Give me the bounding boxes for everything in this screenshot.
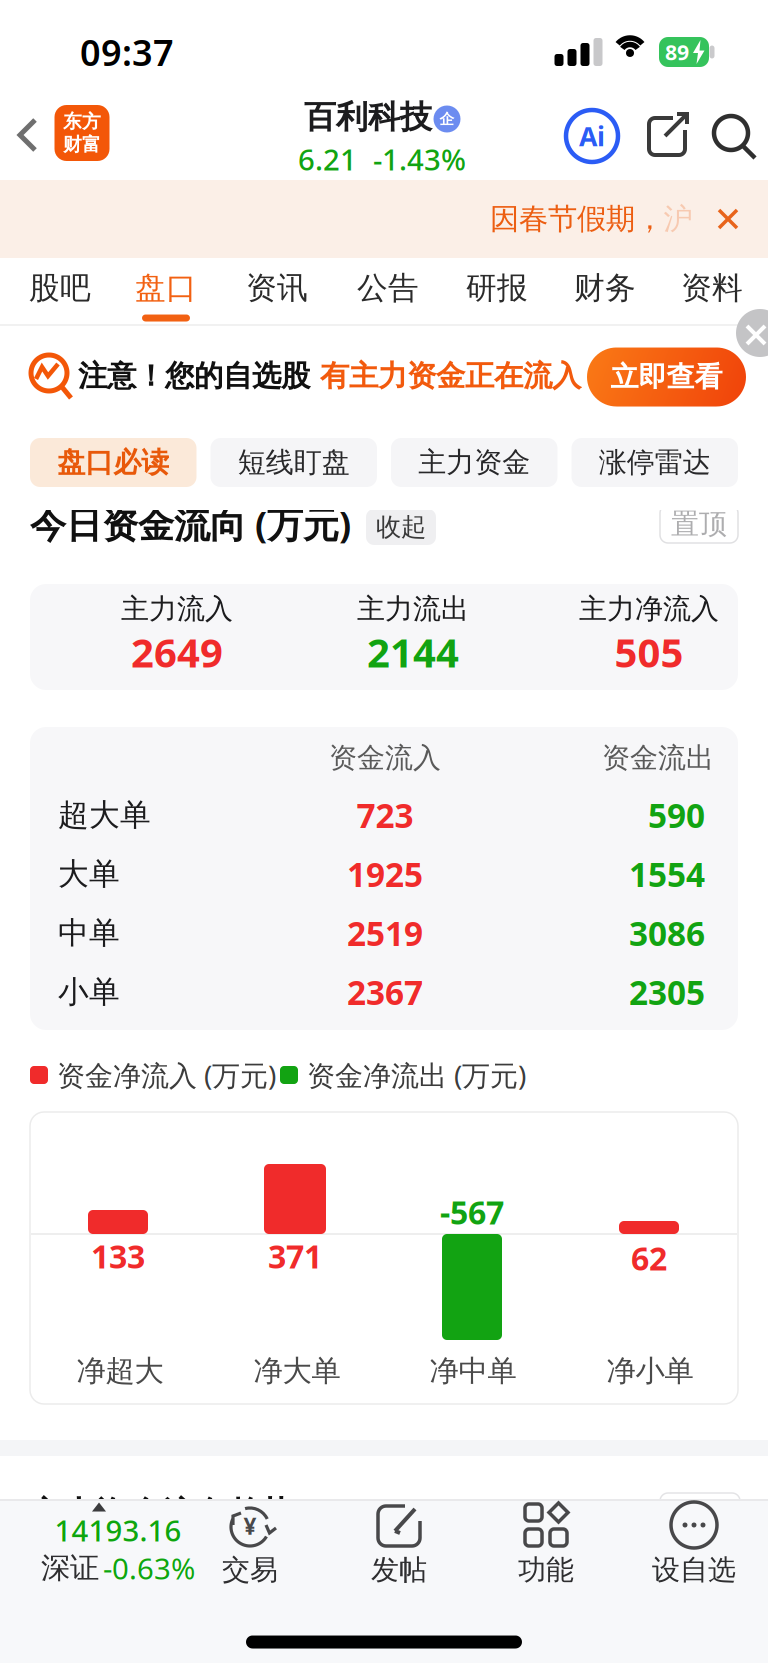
button[interactable]: 收起 [366, 509, 436, 545]
staticText: 立即查看 [610, 360, 722, 394]
staticText: 沪 [663, 201, 692, 237]
button[interactable]: 股吧 [12, 258, 108, 318]
staticText: 2519 [347, 911, 423, 955]
staticText: 设自选 [652, 1553, 736, 1587]
staticText: 百利科技 [304, 97, 432, 137]
button[interactable]: ¥ [155, 1496, 345, 1596]
staticText: 财务 [574, 269, 636, 307]
button[interactable]: 功能 [451, 1496, 641, 1596]
staticText: 资金流出 [602, 741, 714, 775]
staticText: 盘口必读 [57, 445, 169, 480]
staticText: 62 [631, 1237, 667, 1279]
button[interactable]: 主力资金 [391, 438, 557, 487]
staticText: 主力资金流向趋势 [30, 1493, 294, 1534]
staticText: -0.63% [103, 1548, 195, 1587]
staticText: 资金净流出 (万元) [307, 1056, 526, 1094]
button[interactable]: 立即查看 [587, 347, 746, 406]
staticText: 置顶 [671, 507, 727, 541]
button[interactable]: Back [17, 118, 39, 152]
button[interactable]: Search [711, 113, 757, 159]
staticText: 09:37 [80, 28, 174, 76]
staticText: 功能 [518, 1553, 574, 1587]
staticText: 研报 [466, 269, 528, 307]
staticText: 深证 [41, 1550, 99, 1586]
staticText: -567 [440, 1191, 504, 1233]
button[interactable]: Share [645, 112, 691, 158]
staticText: 2144 [367, 625, 459, 678]
staticText: 股吧 [29, 269, 91, 307]
staticText: 371 [268, 1235, 322, 1277]
staticText: 净超大 [76, 1353, 163, 1389]
button[interactable]: AI assistant [564, 108, 620, 164]
staticText: 盘口 [135, 269, 197, 307]
staticText: 净大单 [253, 1353, 340, 1389]
staticText: 公告 [357, 269, 419, 307]
staticText: 净中单 [429, 1353, 516, 1389]
button[interactable]: Close banner [717, 208, 739, 230]
button[interactable]: 14193.16 [10, 1496, 200, 1596]
staticText: 小单 [58, 973, 120, 1011]
staticText: 发帖 [371, 1553, 427, 1587]
button[interactable]: 置顶 [660, 505, 738, 543]
staticText: 资金流入 [329, 741, 441, 775]
staticText: 590 [648, 793, 705, 837]
staticText: 短线盯盘 [238, 445, 350, 480]
button[interactable]: 资料 [664, 258, 760, 318]
button[interactable]: 短线盯盘 [210, 438, 377, 487]
staticText: 收起 [376, 511, 426, 542]
staticText: 133 [91, 1235, 145, 1277]
button[interactable]: 盘口 [118, 258, 214, 318]
button[interactable]: 公告 [340, 258, 436, 318]
staticText: 3086 [629, 911, 705, 955]
staticText: Ai [579, 118, 605, 154]
staticText: 有主力资金正在流入 [320, 358, 581, 394]
button[interactable]: 设自选 [599, 1496, 768, 1596]
staticText: 主力资金 [418, 445, 530, 480]
staticText: 主力流入 [121, 592, 233, 626]
staticText: 主力流出 [357, 592, 469, 626]
staticText: 723 [356, 793, 413, 837]
staticText: 主力净流入 [579, 592, 719, 626]
staticText: 涨停雷达 [599, 445, 711, 480]
staticText: 1925 [347, 852, 423, 896]
staticText: 注意！您的自选股 [78, 358, 310, 394]
staticText: 2305 [629, 970, 705, 1014]
staticText: 企 [439, 110, 454, 128]
staticText: 505 [614, 625, 683, 678]
button[interactable]: 研报 [449, 258, 545, 318]
staticText: 今日资金流向 (万元) [30, 500, 351, 548]
staticText: 资料 [681, 269, 743, 307]
button[interactable]: 发帖 [304, 1496, 494, 1596]
staticText: 东方 [63, 110, 101, 133]
staticText: 2367 [347, 970, 423, 1014]
staticText: 2649 [131, 625, 223, 678]
staticText: 1554 [629, 852, 705, 896]
button[interactable]: 资讯 [229, 258, 325, 318]
button[interactable]: 涨停雷达 [571, 438, 738, 487]
staticText: 大单 [58, 855, 120, 893]
staticText: 因春节假期， [490, 201, 664, 237]
staticText: 89 [665, 38, 689, 66]
staticText: 净小单 [606, 1353, 693, 1389]
staticText: 财富 [63, 133, 101, 156]
staticText: 6.21 -1.43% [298, 139, 466, 178]
staticText: 资金净流入 (万元) [57, 1056, 276, 1094]
staticText: ¥ [243, 1511, 256, 1541]
staticText: 14193.16 [54, 1510, 181, 1549]
staticText: 交易 [222, 1553, 278, 1587]
button[interactable]: 盘口必读 [30, 438, 196, 487]
button[interactable]: 财务 [557, 258, 653, 318]
staticText: 超大单 [58, 796, 151, 834]
button[interactable]: Dismiss alert [736, 309, 768, 357]
staticText: 中单 [58, 914, 120, 952]
staticText: 资讯 [246, 269, 308, 307]
